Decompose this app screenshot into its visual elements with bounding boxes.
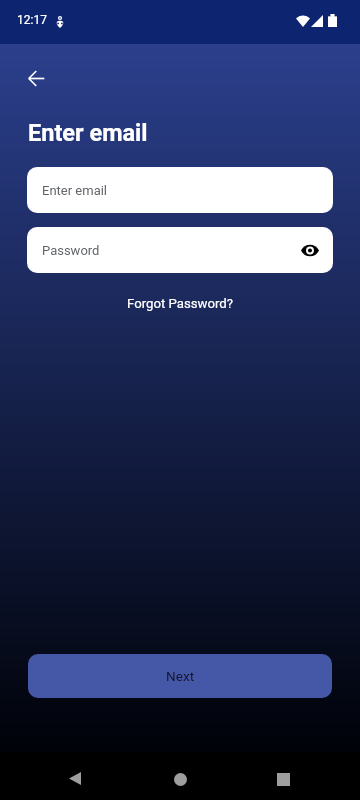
staticText: Next bbox=[166, 668, 195, 684]
button[interactable]: Enter email bbox=[27, 167, 333, 213]
button[interactable]: Password bbox=[27, 227, 333, 273]
button[interactable]: Back bbox=[55, 752, 95, 800]
button[interactable]: Recent apps bbox=[263, 752, 303, 800]
staticText: Password bbox=[42, 243, 100, 258]
staticText: 12:17 bbox=[17, 13, 47, 27]
button[interactable]: Forgot Password? bbox=[119, 292, 242, 315]
button[interactable]: Home bbox=[160, 752, 200, 800]
staticText: Enter email bbox=[42, 183, 108, 198]
staticText: Enter email bbox=[28, 119, 148, 147]
button[interactable]: Show password bbox=[293, 233, 327, 267]
staticText: Forgot Password? bbox=[127, 296, 234, 311]
button[interactable]: Next bbox=[28, 654, 332, 698]
button[interactable]: Back bbox=[14, 56, 58, 100]
